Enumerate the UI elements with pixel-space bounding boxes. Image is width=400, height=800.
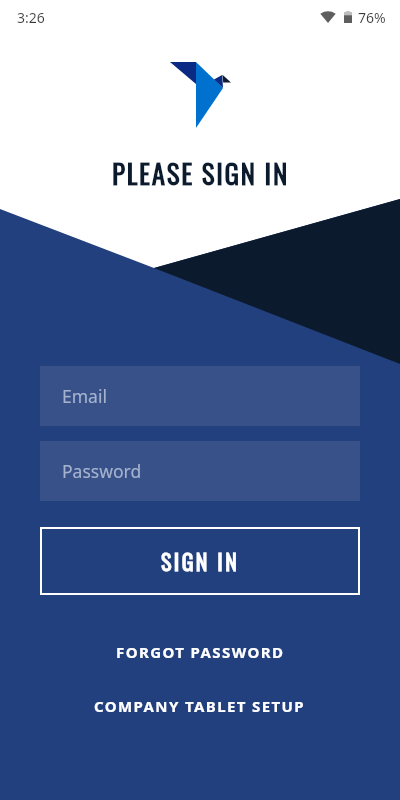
staticText: Password	[62, 459, 142, 483]
button[interactable]: FORGOT PASSWORD	[102, 635, 299, 669]
staticText: PLEASE SIGN IN	[112, 153, 289, 187]
other: Company logo	[170, 62, 231, 128]
staticText: FORGOT PASSWORD	[116, 642, 285, 662]
button[interactable]: COMPANY TABLET SETUP	[80, 689, 320, 723]
other: Wi-Fi connected	[320, 11, 336, 23]
button[interactable]: SIGN IN	[40, 527, 360, 595]
staticText: 3:26	[17, 8, 45, 27]
staticText: COMPANY TABLET SETUP	[94, 696, 306, 716]
staticText: SIGN IN	[161, 545, 240, 578]
button[interactable]: Password	[40, 441, 360, 501]
staticText: Email	[62, 384, 107, 408]
other: Battery 76 percent	[344, 11, 352, 23]
staticText: 76%	[358, 8, 386, 27]
button[interactable]: Email	[40, 366, 360, 426]
